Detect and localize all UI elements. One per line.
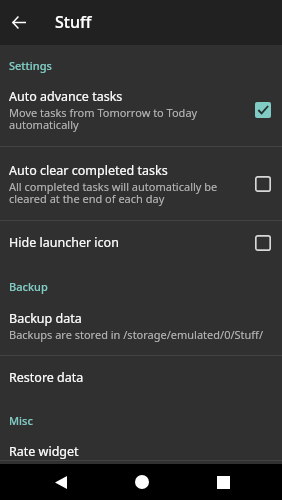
button[interactable]: Auto advance tasks xyxy=(0,88,282,146)
button[interactable]: Restore data xyxy=(0,356,282,399)
staticText: Settings xyxy=(9,58,52,73)
staticText: Backup xyxy=(9,279,48,294)
staticText: Misc xyxy=(9,413,33,428)
staticText: Hide launcher icon xyxy=(9,234,119,251)
staticText: Move tasks from Tomorrow to Today automa… xyxy=(9,105,247,132)
staticText: Auto advance tasks xyxy=(9,88,123,105)
button[interactable]: Navigate up xyxy=(0,0,37,45)
button[interactable]: Rate widget xyxy=(0,443,282,460)
staticText: All completed tasks will automatically b… xyxy=(9,179,247,206)
staticText: Auto clear completed tasks xyxy=(9,162,168,179)
button[interactable]: Recent apps xyxy=(205,464,242,500)
staticText: Backup data xyxy=(9,310,82,327)
button[interactable]: Auto clear completed tasks xyxy=(0,147,282,220)
staticText: Stuff xyxy=(55,11,92,33)
button[interactable]: Hide launcher icon xyxy=(0,221,282,263)
button[interactable]: Backup data xyxy=(0,309,282,355)
button[interactable]: Home xyxy=(123,464,160,500)
staticText: Restore data xyxy=(9,369,84,386)
staticText: Backups are stored in /storage/emulated/… xyxy=(9,327,263,342)
button[interactable]: Back xyxy=(42,464,79,500)
staticText: Rate widget xyxy=(9,443,79,460)
